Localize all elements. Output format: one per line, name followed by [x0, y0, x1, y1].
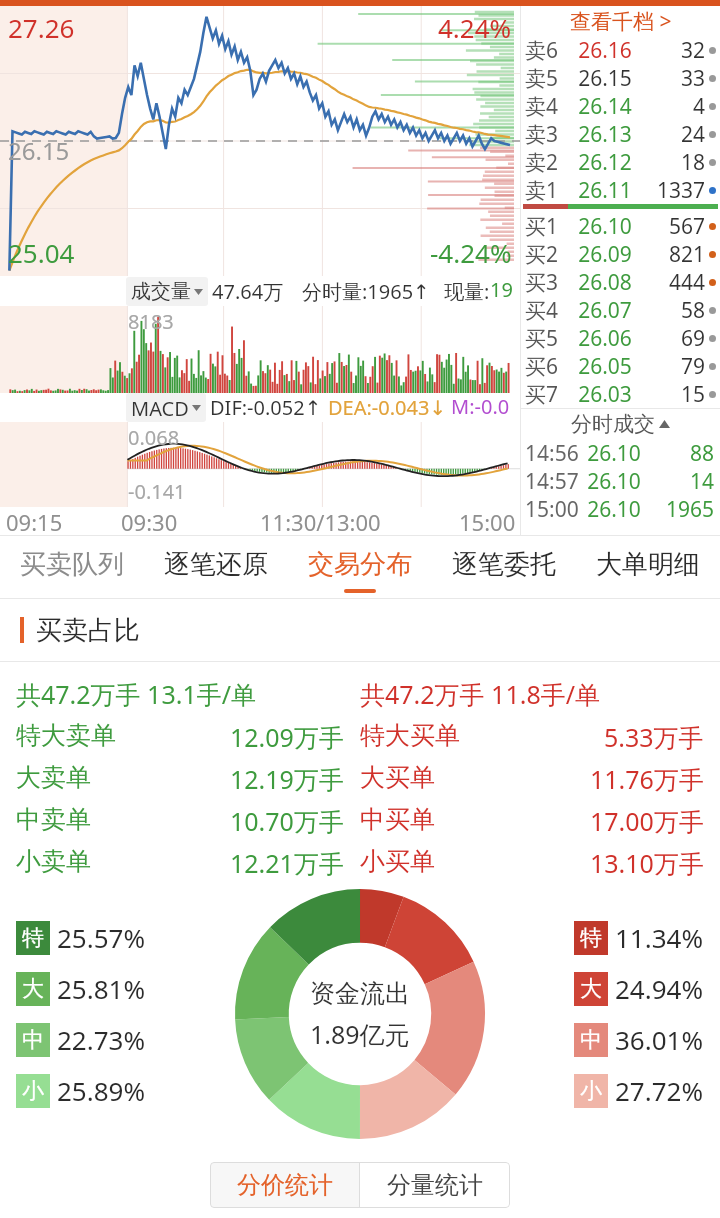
- staticText: 买4: [525, 296, 571, 324]
- button[interactable]: 买卖队列: [0, 536, 144, 598]
- button[interactable]: 买3: [521, 268, 720, 296]
- staticText: 79: [639, 352, 705, 380]
- staticText: 14: [645, 467, 714, 495]
- button[interactable]: 中: [16, 1022, 146, 1057]
- button[interactable]: 小: [16, 1073, 146, 1108]
- staticText: 小买单: [360, 846, 435, 877]
- button[interactable]: 中: [574, 1022, 704, 1057]
- button[interactable]: 买6: [521, 352, 720, 380]
- staticText: 分量统计: [387, 1170, 483, 1200]
- staticText: 14:57: [525, 467, 583, 495]
- staticText: 中: [22, 1026, 44, 1054]
- staticText: 26.06: [571, 324, 639, 352]
- button[interactable]: 15:00: [521, 495, 720, 523]
- staticText: 特大卖单: [16, 720, 116, 751]
- staticText: 17.00万手: [590, 804, 704, 838]
- staticText: DEA:-0.043↓: [328, 394, 447, 421]
- staticText: 8183: [128, 308, 174, 335]
- staticText: 15:00: [525, 495, 583, 523]
- button[interactable]: 成交量: [126, 277, 208, 306]
- button[interactable]: 卖4: [521, 92, 720, 120]
- button[interactable]: 分价统计: [210, 1162, 359, 1208]
- staticText: 中卖单: [16, 804, 91, 835]
- staticText: 27.72%: [615, 1073, 704, 1108]
- button[interactable]: 14:56: [521, 439, 720, 467]
- staticText: 26.14: [571, 92, 639, 120]
- staticText: 09:15: [6, 507, 63, 535]
- staticText: 1965: [645, 495, 714, 523]
- staticText: 大买单: [360, 762, 435, 793]
- staticText: 69: [639, 324, 705, 352]
- staticText: 26.15: [571, 64, 639, 92]
- staticText: 25.81%: [57, 971, 146, 1006]
- staticText: 11:30/13:00: [260, 507, 381, 535]
- staticText: 12.21万手: [230, 846, 344, 880]
- staticText: 26.08: [571, 268, 639, 296]
- button[interactable]: 买7: [521, 380, 720, 408]
- button[interactable]: 大单明细: [576, 536, 720, 598]
- staticText: 26.13: [571, 120, 639, 148]
- staticText: 小: [580, 1077, 602, 1105]
- staticText: 11.76万手: [590, 762, 704, 796]
- button[interactable]: 买2: [521, 240, 720, 268]
- staticText: 12.19万手: [230, 762, 344, 796]
- staticText: 4.24%: [438, 10, 512, 45]
- staticText: 26.10: [583, 439, 645, 467]
- staticText: 26.16: [571, 36, 639, 64]
- staticText: 26.07: [571, 296, 639, 324]
- button[interactable]: 买1: [521, 212, 720, 240]
- button[interactable]: MACD: [126, 393, 206, 422]
- staticText: 26.10: [583, 495, 645, 523]
- staticText: 26.12: [571, 148, 639, 176]
- staticText: 逐笔还原: [164, 548, 268, 581]
- staticText: 11.34%: [615, 920, 704, 955]
- staticText: 特大买单: [360, 720, 460, 751]
- button[interactable]: 交易分布: [288, 536, 432, 598]
- button[interactable]: 大: [574, 971, 704, 1006]
- button[interactable]: 卖6: [521, 36, 720, 64]
- button[interactable]: 大: [16, 971, 146, 1006]
- button[interactable]: 卖1: [521, 176, 720, 204]
- button[interactable]: 14:57: [521, 467, 720, 495]
- button[interactable]: 查看千档 >: [521, 6, 720, 36]
- staticText: 5.33万手: [604, 720, 704, 754]
- staticText: 交易分布: [308, 548, 412, 581]
- button[interactable]: 买4: [521, 296, 720, 324]
- staticText: 成交量: [131, 279, 191, 304]
- staticText: 1965: [490, 276, 520, 306]
- staticText: 26.09: [571, 240, 639, 268]
- staticText: 分时量:1965↑: [302, 278, 430, 305]
- staticText: 卖2: [525, 148, 571, 176]
- staticText: 小: [22, 1077, 44, 1105]
- button[interactable]: 分量统计: [360, 1162, 510, 1208]
- staticText: 444: [639, 268, 705, 296]
- staticText: 24.94%: [615, 971, 704, 1006]
- button[interactable]: 特: [574, 920, 704, 955]
- button[interactable]: 特: [16, 920, 146, 955]
- button[interactable]: 卖3: [521, 120, 720, 148]
- staticText: 1.89亿元: [310, 1017, 410, 1051]
- staticText: 26.11: [571, 176, 639, 204]
- staticText: 567: [639, 212, 705, 240]
- staticText: 卖6: [525, 36, 571, 64]
- staticText: 大卖单: [16, 762, 91, 793]
- button[interactable]: 卖2: [521, 148, 720, 176]
- button[interactable]: 小: [574, 1073, 704, 1108]
- staticText: 26.10: [583, 467, 645, 495]
- staticText: MACD: [131, 395, 189, 420]
- button[interactable]: 卖5: [521, 64, 720, 92]
- staticText: 卖3: [525, 120, 571, 148]
- staticText: 36.01%: [615, 1022, 704, 1057]
- staticText: 卖5: [525, 64, 571, 92]
- button[interactable]: 买5: [521, 324, 720, 352]
- staticText: 大单明细: [596, 548, 700, 581]
- staticText: 15:00: [459, 507, 516, 535]
- button[interactable]: 逐笔还原: [144, 536, 288, 598]
- staticText: 12.09万手: [230, 720, 344, 754]
- button[interactable]: 分时成交: [521, 409, 720, 439]
- staticText: 09:30: [121, 507, 178, 535]
- staticText: 18: [639, 148, 705, 176]
- button[interactable]: 逐笔委托: [432, 536, 576, 598]
- staticText: 15: [639, 380, 705, 408]
- staticText: 26.05: [571, 352, 639, 380]
